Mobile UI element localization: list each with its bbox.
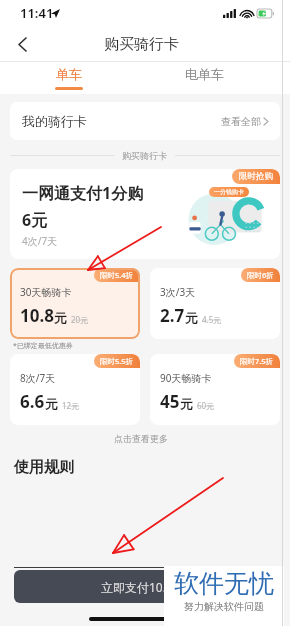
staticText: 单车 — [56, 66, 82, 82]
staticText: 使用规则 — [14, 458, 74, 477]
staticText: 一分钱购卡 — [214, 188, 244, 196]
staticText: 限时6折 — [247, 270, 274, 280]
staticText: 30天畅骑卡 — [20, 285, 72, 299]
staticText: 元 — [180, 396, 193, 412]
button[interactable]: 点击查看更多 — [114, 433, 168, 444]
button[interactable]: 限时抢购 — [10, 169, 280, 259]
staticText: 限时抢购 — [239, 171, 273, 182]
staticText: 电单车 — [185, 66, 224, 82]
button[interactable]: 限时6折 — [150, 268, 280, 339]
button[interactable]: 限时5.4折 — [10, 268, 140, 339]
staticText: 4次/7天 — [22, 234, 58, 248]
staticText: 努力解决软件问题 — [184, 600, 264, 613]
staticText: 45 — [160, 390, 180, 413]
staticText: 元 — [185, 310, 198, 326]
staticText: 我的骑行卡 — [22, 113, 87, 129]
staticText: 4.5元 — [202, 314, 222, 325]
staticText: 10.8 — [20, 304, 54, 327]
button[interactable]: 立即支付10.8元 — [14, 570, 272, 603]
button[interactable]: 限时5.5折 — [10, 354, 140, 425]
staticText: 元 — [45, 396, 58, 412]
staticText: 11:41 — [20, 4, 54, 22]
staticText: 一网通支付1分购 — [22, 182, 144, 204]
staticText: 8次/7天 — [20, 371, 56, 385]
staticText: 6.6 — [20, 390, 45, 413]
staticText: 12元 — [62, 400, 80, 411]
staticText: *已绑定最低优惠券 — [13, 341, 73, 351]
button[interactable]: Back — [8, 30, 36, 58]
staticText: 元 — [54, 310, 67, 326]
staticText: 60元 — [197, 400, 215, 411]
staticText: 限时7.5折 — [240, 356, 274, 366]
staticText: 购买骑行卡 — [104, 35, 179, 54]
button[interactable]: 电单车 — [185, 66, 224, 82]
staticText: 20元 — [71, 314, 89, 325]
staticText: 软件无忧 — [174, 568, 274, 599]
staticText: 立即支付10.8元 — [101, 579, 185, 595]
staticText: 查看全部 — [221, 115, 261, 128]
staticText: 6元 — [22, 209, 48, 231]
button[interactable]: 我的骑行卡 — [10, 102, 280, 140]
staticText: 2.7 — [160, 304, 185, 327]
staticText: 点击查看更多 — [114, 433, 168, 444]
button[interactable]: 限时7.5折 — [150, 354, 280, 425]
staticText: 购买骑行卡 — [122, 150, 167, 161]
staticText: 90天畅骑卡 — [160, 371, 212, 385]
button[interactable]: 单车 — [55, 62, 83, 90]
staticText: 限时5.4折 — [100, 270, 134, 280]
staticText: 3次/3天 — [160, 285, 196, 299]
staticText: 限时5.5折 — [100, 356, 134, 366]
